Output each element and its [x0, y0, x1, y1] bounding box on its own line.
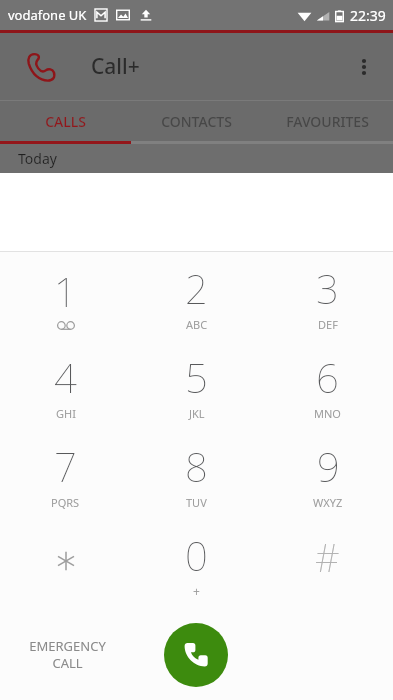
staticText: 6 [316, 350, 339, 404]
button[interactable]: Call [22, 48, 60, 86]
button[interactable] [0, 519, 131, 608]
staticText: FAVOURITES [286, 112, 369, 131]
staticText: DEF [318, 317, 338, 332]
staticText: PQRS [51, 495, 80, 510]
button[interactable]: 1 [0, 252, 131, 341]
button[interactable]: EMERGENCY CALL [8, 624, 126, 684]
button[interactable]: CONTACTS [131, 101, 262, 141]
staticText: 5 [185, 350, 208, 404]
staticText: 9 [317, 439, 340, 493]
button[interactable]: Call [164, 623, 228, 687]
staticText: 4 [54, 350, 77, 404]
button[interactable]: 6 [262, 341, 393, 430]
staticText: EMERGENCY CALL [29, 637, 106, 672]
staticText: 7 [54, 439, 77, 493]
staticText: vodafone UK [8, 6, 87, 24]
staticText: MNO [314, 406, 341, 421]
staticText: 2 [185, 261, 208, 315]
staticText: WXYZ [313, 495, 343, 510]
button[interactable]: # [262, 519, 393, 608]
staticText: ABC [186, 317, 208, 332]
staticText: 1 [54, 264, 77, 318]
staticText: # [315, 531, 340, 583]
button[interactable]: 7 [0, 430, 131, 519]
button[interactable]: FAVOURITES [262, 101, 393, 141]
staticText: Today [18, 149, 57, 168]
button[interactable]: More options [343, 46, 385, 88]
button[interactable]: CALLS [0, 101, 131, 141]
button[interactable]: 2 [131, 252, 262, 341]
staticText: + [193, 583, 200, 599]
staticText: GHI [56, 406, 76, 421]
button[interactable]: 0 [131, 519, 262, 608]
staticText: CALLS [45, 112, 86, 131]
staticText: 22:39 [350, 6, 386, 25]
staticText: Call+ [91, 52, 140, 81]
staticText: 0 [185, 528, 208, 582]
button[interactable]: 3 [262, 252, 393, 341]
staticText: TUV [186, 495, 207, 510]
staticText: CONTACTS [161, 112, 232, 131]
staticText: JKL [189, 406, 205, 421]
staticText: 3 [316, 261, 339, 315]
staticText: 8 [185, 439, 208, 493]
button[interactable]: 4 [0, 341, 131, 430]
button[interactable]: 8 [131, 430, 262, 519]
button[interactable]: 5 [131, 341, 262, 430]
button[interactable]: 9 [262, 430, 393, 519]
